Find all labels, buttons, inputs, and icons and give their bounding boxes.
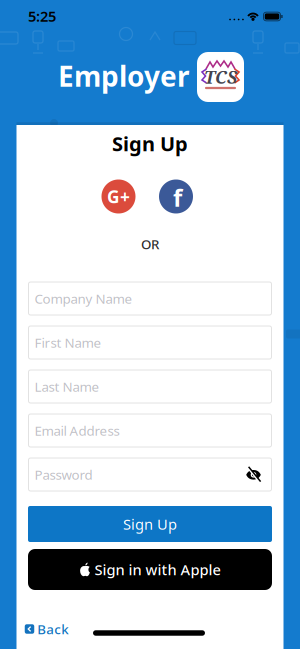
staticText: Email Address <box>34 422 119 439</box>
staticText: Company Name <box>34 290 132 307</box>
staticText: Sign Up <box>112 130 188 157</box>
button[interactable]: Sign Up <box>28 506 272 542</box>
staticText: Password <box>34 466 92 483</box>
staticText: Sign in with Apple <box>94 560 220 579</box>
staticText: Last Name <box>34 378 99 395</box>
staticText: Back <box>37 620 68 638</box>
staticText: OR <box>141 235 159 253</box>
staticText: f <box>173 182 182 213</box>
button[interactable]: Sign in with Apple <box>28 549 272 590</box>
button[interactable]: Back <box>25 620 68 638</box>
button[interactable]: Sign up with Google <box>101 179 135 213</box>
staticText: First Name <box>34 334 101 351</box>
button[interactable]: Show password <box>242 464 264 484</box>
staticText: Sign Up <box>123 514 177 534</box>
staticText: 5:25 <box>28 6 56 26</box>
staticText: G+ <box>107 185 130 208</box>
staticText: Employer <box>58 57 190 95</box>
button[interactable]: Sign up with Facebook <box>159 179 193 213</box>
staticText: TCS <box>204 65 237 89</box>
